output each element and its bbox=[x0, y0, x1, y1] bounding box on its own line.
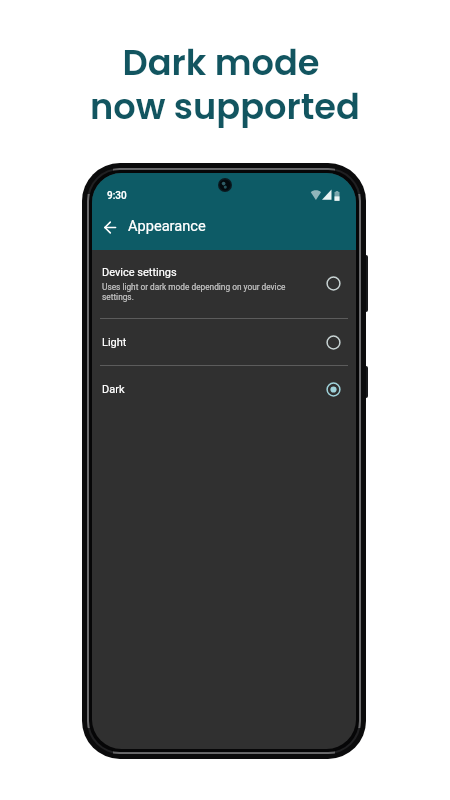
staticText: Light bbox=[102, 336, 127, 349]
staticText: Appearance bbox=[128, 217, 206, 234]
staticText: Dark bbox=[102, 383, 125, 396]
staticText: Device settings bbox=[102, 266, 177, 279]
button[interactable]: Device settings bbox=[92, 249, 356, 318]
staticText: Dark mode bbox=[0, 38, 446, 87]
button[interactable]: Back bbox=[97, 213, 126, 242]
button[interactable]: Dark bbox=[92, 366, 356, 412]
staticText: Uses light or dark mode depending on you… bbox=[102, 282, 300, 302]
button[interactable]: Light bbox=[92, 319, 356, 365]
staticText: 9:30 bbox=[107, 190, 127, 202]
staticText: now supported bbox=[0, 82, 450, 131]
